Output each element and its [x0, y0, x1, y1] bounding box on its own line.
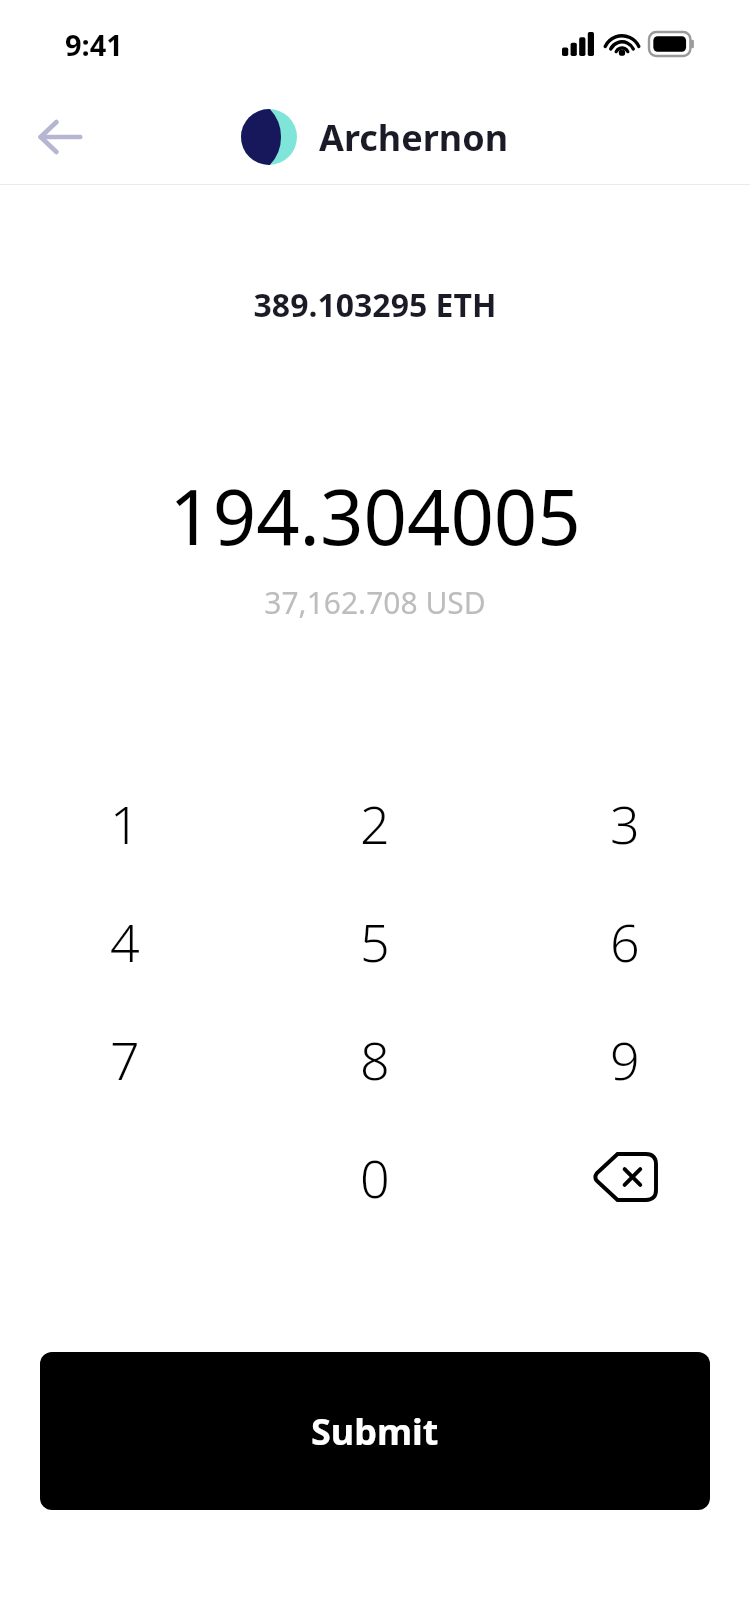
button[interactable]: 5 — [250, 882, 500, 1000]
button[interactable]: 9 — [500, 1000, 750, 1118]
staticText: 9 — [610, 1024, 640, 1095]
staticText: 5 — [360, 906, 390, 977]
staticText: 3 — [610, 788, 640, 859]
button[interactable]: 7 — [0, 1000, 250, 1118]
button[interactable]: 4 — [0, 882, 250, 1000]
staticText: 0 — [360, 1142, 390, 1213]
button[interactable]: 8 — [250, 1000, 500, 1118]
staticText: Archernon — [319, 113, 509, 162]
staticText: 1 — [110, 788, 140, 859]
button[interactable]: 1 — [0, 764, 250, 882]
staticText: 194.304005 — [0, 464, 750, 568]
button[interactable]: 0 — [250, 1118, 500, 1236]
staticText: 4 — [110, 906, 140, 977]
button[interactable]: 3 — [500, 764, 750, 882]
staticText: 2 — [360, 788, 390, 859]
button[interactable]: Back — [20, 97, 100, 177]
button[interactable]: Backspace — [500, 1118, 750, 1236]
staticText: 8 — [360, 1024, 390, 1095]
staticText: 7 — [110, 1024, 140, 1095]
button[interactable]: 2 — [250, 764, 500, 882]
staticText: 37,162.708 USD — [0, 582, 750, 623]
staticText: 6 — [610, 906, 640, 977]
button[interactable]: 6 — [500, 882, 750, 1000]
staticText: 9:41 — [65, 25, 123, 64]
staticText: 389.103295 ETH — [0, 283, 750, 327]
button[interactable]: Submit — [40, 1352, 710, 1510]
staticText: Submit — [311, 1407, 439, 1456]
